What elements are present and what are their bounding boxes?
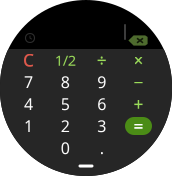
button[interactable]: ÷ xyxy=(83,49,120,71)
staticText: 1 xyxy=(24,115,33,137)
button[interactable]: = xyxy=(120,115,157,137)
button[interactable]: C xyxy=(10,49,47,71)
button[interactable]: 0 xyxy=(47,137,83,159)
staticText: 6 xyxy=(97,93,106,115)
staticText: 4 xyxy=(24,93,33,115)
staticText: × xyxy=(133,48,143,71)
button[interactable]: 5 xyxy=(47,93,83,115)
staticText: = xyxy=(133,114,143,137)
staticText: . xyxy=(100,137,104,159)
button[interactable]: + xyxy=(120,93,157,115)
staticText: 2 xyxy=(61,115,70,137)
button[interactable]: 8 xyxy=(47,71,83,93)
button[interactable]: 4 xyxy=(10,93,47,115)
button[interactable]: . xyxy=(83,137,120,159)
button[interactable]: 6 xyxy=(83,93,120,115)
staticText: 3 xyxy=(97,115,106,137)
button[interactable]: 3 xyxy=(83,115,120,137)
button[interactable]: 1 xyxy=(10,115,47,137)
staticText: + xyxy=(133,92,143,115)
staticText: 8 xyxy=(61,71,70,93)
button[interactable]: 7 xyxy=(10,71,47,93)
button[interactable]: − xyxy=(120,71,157,93)
button[interactable] xyxy=(120,137,157,159)
staticText: 9 xyxy=(97,71,106,93)
staticText: − xyxy=(133,70,143,93)
staticText: 7 xyxy=(24,71,33,93)
staticText: 0 xyxy=(61,137,70,159)
staticText: C xyxy=(23,48,34,71)
button[interactable]: Delete xyxy=(128,35,148,46)
button[interactable]: 2 xyxy=(47,115,83,137)
staticText: 5 xyxy=(61,93,70,115)
button[interactable]: × xyxy=(120,49,157,71)
staticText: ÷ xyxy=(97,48,107,71)
button[interactable] xyxy=(10,137,47,159)
button[interactable]: 9 xyxy=(83,71,120,93)
staticText: 1/2 xyxy=(55,50,76,70)
button[interactable]: 1/2 xyxy=(47,49,83,71)
